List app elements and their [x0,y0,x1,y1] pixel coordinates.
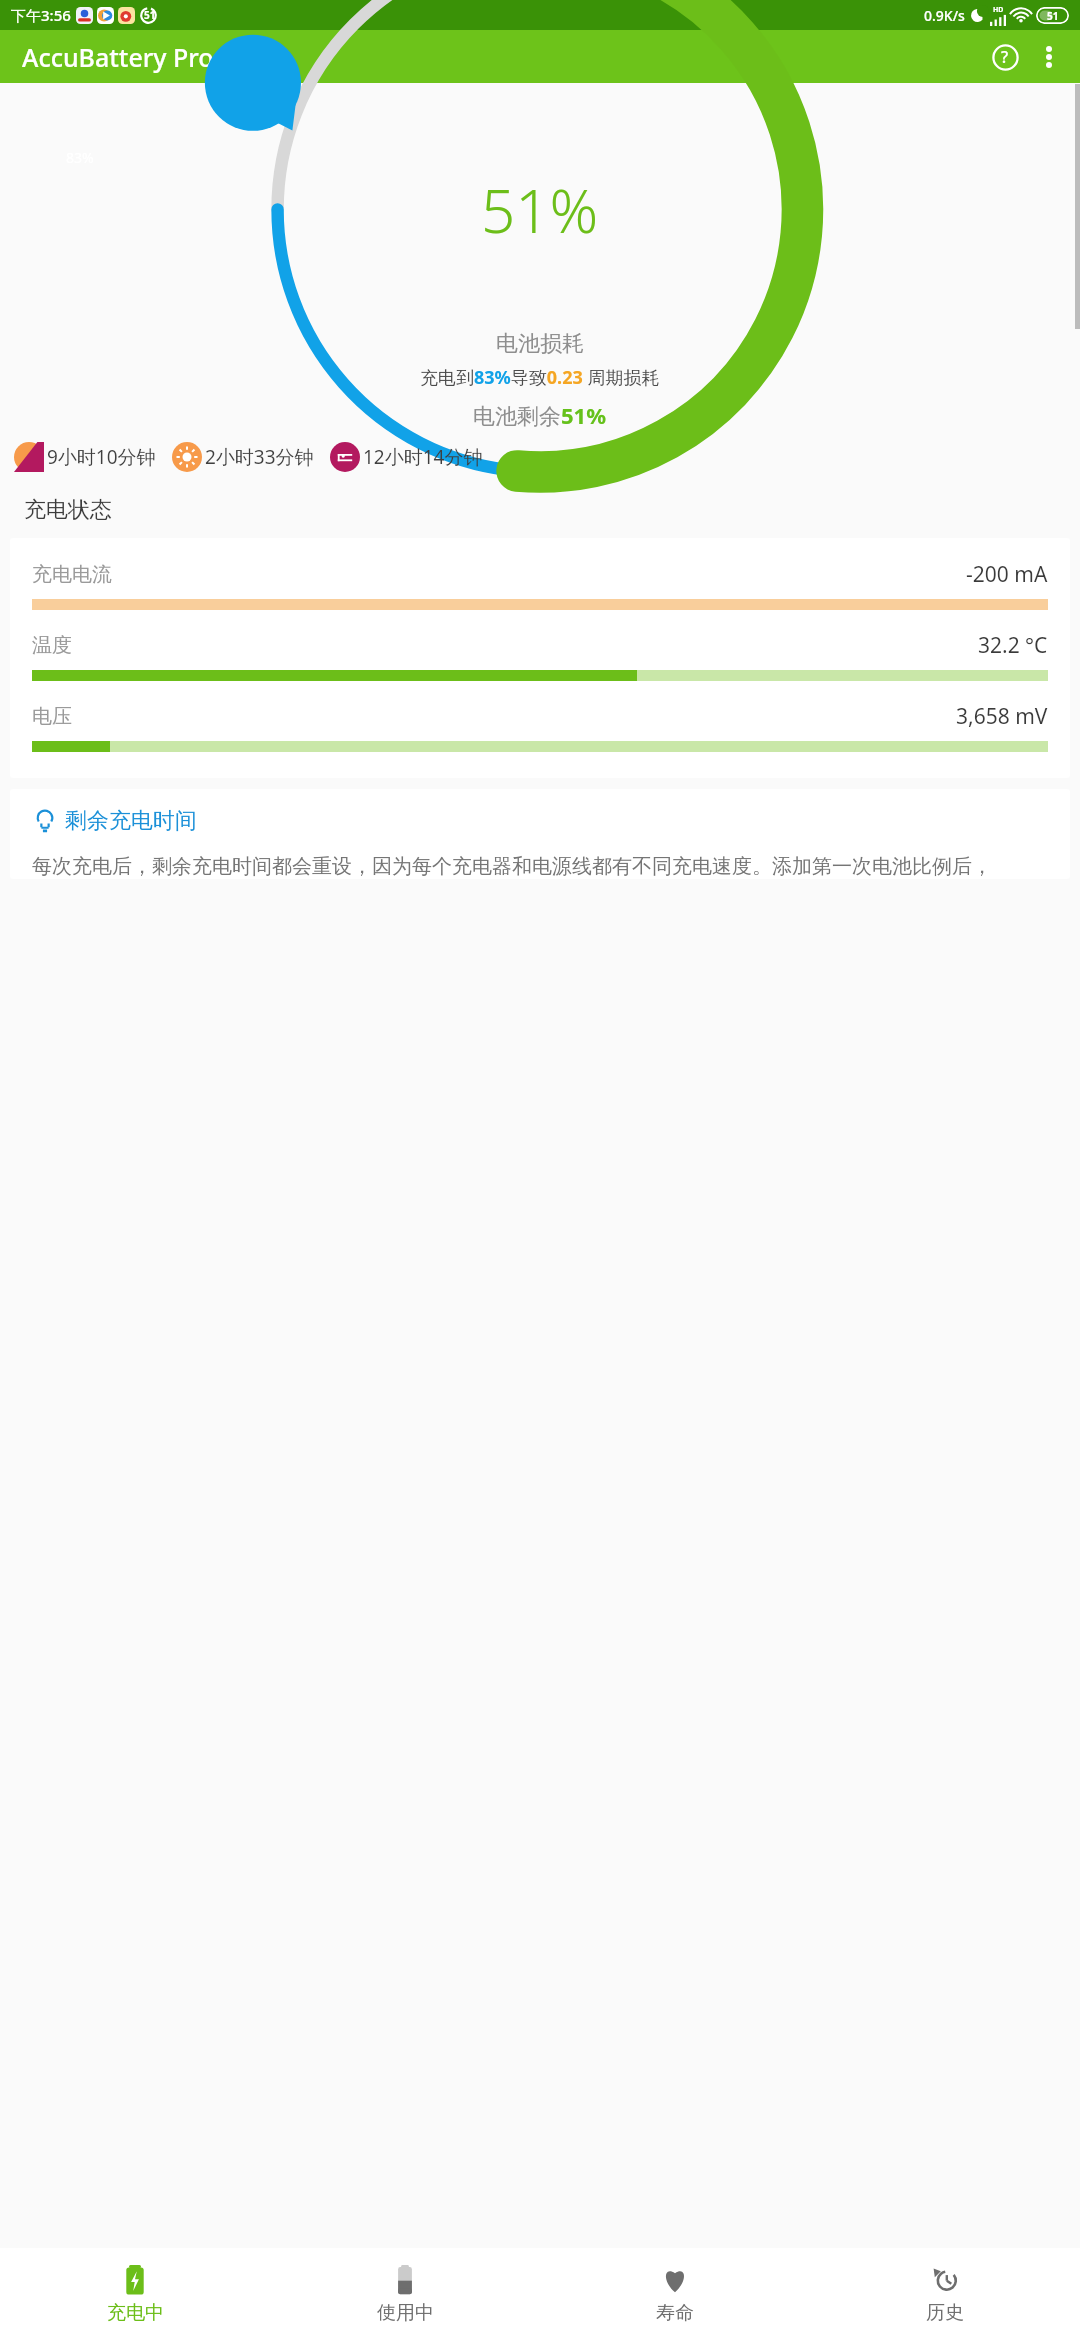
staticText: 充电中 [107,2301,164,2325]
staticText: 电池损耗 [496,330,584,358]
staticText: 使用中 [377,2301,434,2325]
staticText: ? [1001,46,1009,68]
staticText: 2小时33分钟 [205,444,314,470]
button[interactable]: Help [983,35,1027,79]
button[interactable]: 使用中 [270,2248,540,2340]
staticText: 下午3:56 [11,5,71,25]
staticText: 充电状态 [24,496,112,524]
button[interactable]: More options [1027,35,1071,79]
staticText: 12小时14分钟 [363,444,483,470]
staticText: 每次充电后，剩余充电时间都会重设，因为每个充电器和电源线都有不同充电速度。添加第… [32,854,992,879]
staticText: HD [993,5,1004,15]
staticText: 51 [1047,9,1059,23]
staticText: 充电电流 [32,562,112,587]
button[interactable]: 充电中 [0,2248,270,2340]
staticText: 寿命 [656,2301,694,2325]
staticText: 51% [481,169,599,251]
staticText: 0.9K/s [924,6,965,25]
staticText: -200 mA [966,560,1048,589]
staticText: 剩余充电时间 [65,807,197,835]
staticText: 3,658 mV [956,702,1048,731]
staticText: 电压 [32,704,72,729]
button[interactable]: 历史 [810,2248,1080,2340]
staticText: AccuBattery Pro [22,40,214,74]
staticText: 9小时10分钟 [47,444,156,470]
staticText: 电池剩余51% [473,400,607,430]
staticText: 充电到83%导致0.23 周期损耗 [420,365,660,390]
button[interactable]: 寿命 [540,2248,810,2340]
staticText: 51 [144,8,156,22]
staticText: 温度 [32,633,72,658]
staticText: 32.2 °C [978,631,1048,660]
staticText: 历史 [926,2301,964,2325]
